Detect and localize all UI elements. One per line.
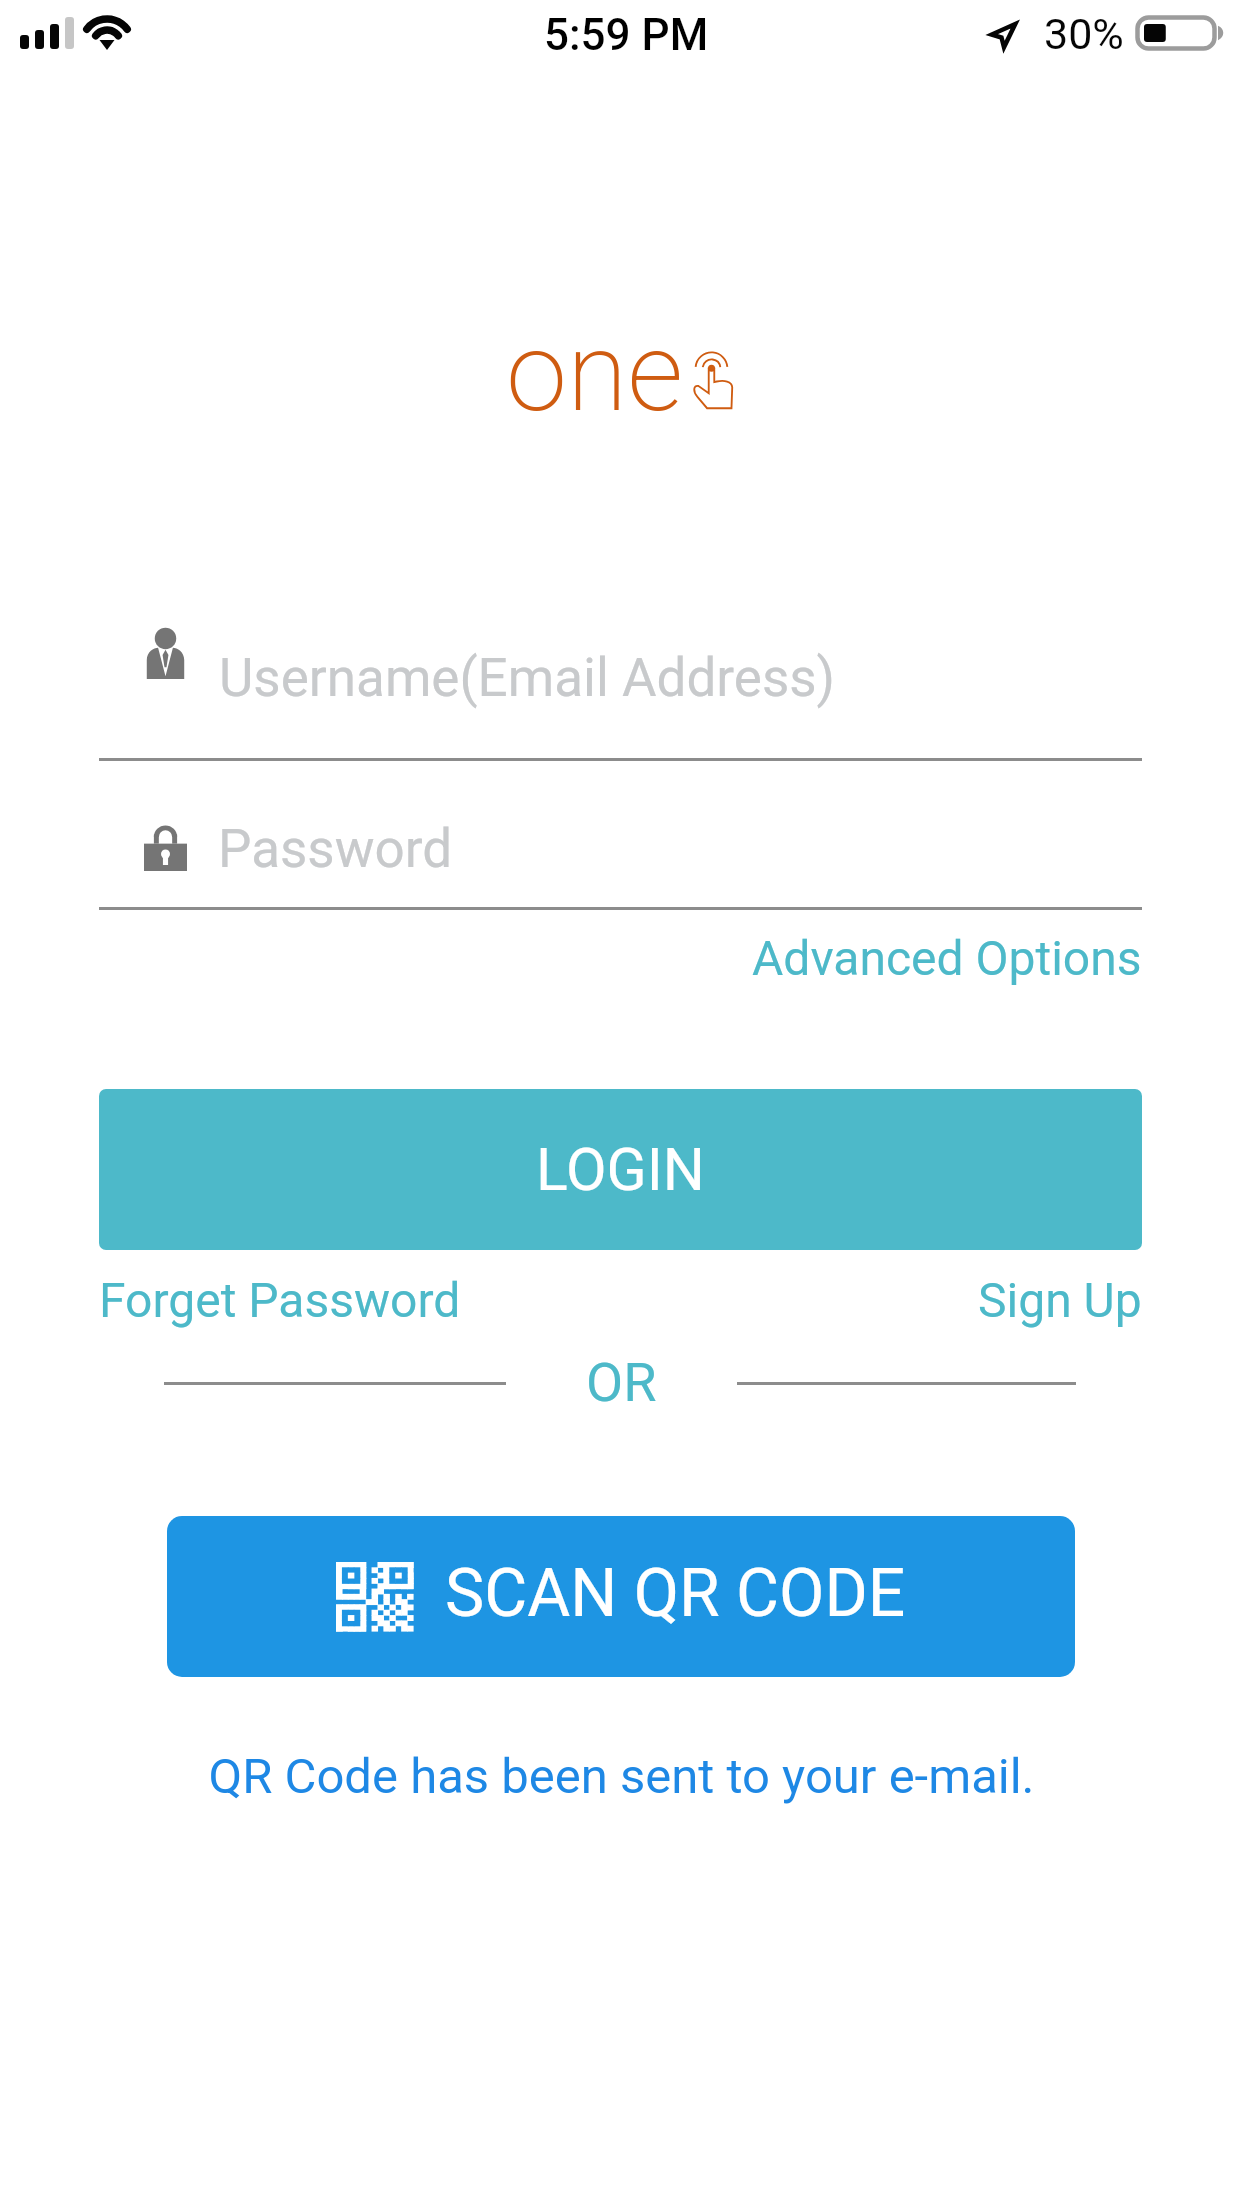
staticText: QR Code has been sent to your e-mail. bbox=[208, 1748, 1035, 1805]
other: Password bbox=[144, 823, 187, 871]
staticText: SCAN QR CODE bbox=[445, 1555, 906, 1632]
button[interactable]: Advanced Options bbox=[99, 920, 1142, 996]
button[interactable]: Sign Up bbox=[978, 1264, 1142, 1336]
staticText: Sign Up bbox=[978, 1272, 1142, 1328]
other: Username bbox=[146, 626, 185, 679]
button[interactable]: Forget Password bbox=[99, 1264, 461, 1336]
button[interactable]: Password bbox=[99, 800, 1142, 908]
button[interactable]: LOGIN bbox=[99, 1089, 1142, 1250]
staticText: Forget Password bbox=[99, 1272, 461, 1328]
staticText: Username(Email Address) bbox=[219, 647, 836, 709]
staticText: Advanced Options bbox=[752, 930, 1142, 986]
staticText: LOGIN bbox=[536, 1135, 705, 1204]
staticText: OR bbox=[586, 1351, 657, 1414]
other: Scan QR Code bbox=[336, 1562, 413, 1631]
other: Tap bbox=[693, 350, 730, 410]
button[interactable]: Scan QR Code bbox=[167, 1516, 1075, 1677]
staticText: one bbox=[506, 308, 684, 437]
staticText: Password bbox=[218, 818, 453, 880]
staticText: 30% bbox=[1044, 9, 1124, 59]
button[interactable]: Username bbox=[99, 620, 1142, 759]
staticText: 5:59 PM bbox=[544, 9, 709, 61]
